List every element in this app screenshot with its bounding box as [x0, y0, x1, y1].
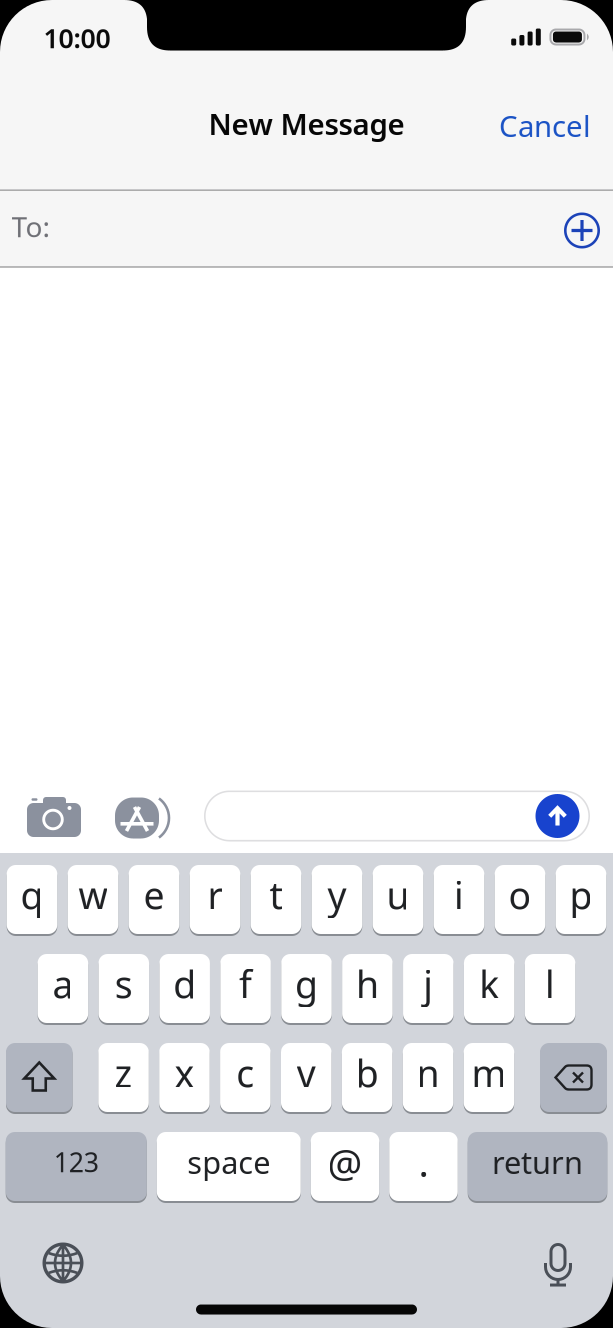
- button[interactable]: s: [98, 954, 149, 1023]
- button[interactable]: Dictate: [536, 1242, 580, 1288]
- staticText: y: [327, 870, 346, 920]
- staticText: To:: [11, 208, 50, 245]
- button[interactable]: r: [190, 865, 240, 934]
- button[interactable]: Cancel: [491, 106, 599, 145]
- button[interactable]: Add Contact: [560, 208, 604, 252]
- button[interactable]: u: [373, 865, 423, 934]
- button[interactable]: space: [157, 1132, 301, 1201]
- staticText: j: [423, 959, 433, 1009]
- button[interactable]: f: [220, 954, 271, 1023]
- staticText: 123: [54, 1144, 99, 1180]
- staticText: .: [418, 1136, 428, 1188]
- button[interactable]: h: [342, 954, 393, 1023]
- button[interactable]: z: [98, 1043, 149, 1112]
- button[interactable]: a: [38, 954, 88, 1023]
- button[interactable]: e: [129, 865, 179, 934]
- staticText: s: [115, 959, 133, 1009]
- button[interactable]: l: [525, 954, 575, 1023]
- button[interactable]: p: [556, 865, 606, 934]
- staticText: l: [545, 959, 555, 1009]
- button[interactable]: 123: [6, 1132, 147, 1201]
- button[interactable]: q: [7, 865, 57, 934]
- staticText: a: [52, 959, 73, 1009]
- staticText: q: [20, 870, 43, 920]
- staticText: h: [356, 959, 379, 1009]
- staticText: i: [454, 870, 464, 920]
- staticText: return: [492, 1142, 583, 1182]
- button[interactable]: y: [312, 865, 362, 934]
- staticText: x: [174, 1048, 194, 1098]
- button[interactable]: Next Keyboard: [41, 1241, 85, 1285]
- button[interactable]: b: [342, 1043, 392, 1112]
- staticText: r: [207, 870, 222, 920]
- button[interactable]: w: [68, 865, 118, 934]
- button[interactable]: n: [403, 1043, 453, 1112]
- staticText: u: [386, 870, 409, 920]
- button[interactable]: o: [495, 865, 545, 934]
- staticText: e: [143, 870, 164, 920]
- staticText: f: [239, 959, 252, 1009]
- staticText: d: [173, 959, 196, 1009]
- staticText: v: [297, 1048, 316, 1098]
- staticText: n: [417, 1048, 440, 1098]
- button[interactable]: i: [434, 865, 484, 934]
- staticText: t: [269, 870, 282, 920]
- button[interactable]: Apps: [109, 794, 165, 841]
- staticText: space: [187, 1142, 270, 1182]
- staticText: b: [356, 1048, 379, 1098]
- button[interactable]: d: [159, 954, 210, 1023]
- button[interactable]: g: [281, 954, 332, 1023]
- staticText: Cancel: [499, 106, 591, 145]
- button[interactable]: Delete: [540, 1043, 607, 1112]
- staticText: m: [471, 1048, 506, 1098]
- staticText: c: [236, 1048, 254, 1098]
- button[interactable]: t: [251, 865, 301, 934]
- button[interactable]: k: [464, 954, 514, 1023]
- button[interactable]: Shift: [6, 1043, 72, 1112]
- staticText: New Message: [208, 104, 404, 143]
- staticText: k: [479, 959, 499, 1009]
- button[interactable]: Camera: [26, 795, 82, 841]
- button[interactable]: c: [220, 1043, 271, 1112]
- staticText: @: [327, 1136, 362, 1188]
- button[interactable]: @: [311, 1132, 379, 1201]
- button[interactable]: j: [403, 954, 453, 1023]
- button[interactable]: v: [281, 1043, 331, 1112]
- button[interactable]: m: [464, 1043, 514, 1112]
- staticText: p: [569, 870, 592, 920]
- button[interactable]: .: [389, 1132, 458, 1201]
- staticText: z: [115, 1048, 133, 1098]
- button[interactable]: return: [468, 1132, 607, 1201]
- staticText: w: [78, 870, 107, 920]
- staticText: g: [295, 959, 318, 1009]
- button[interactable]: Send: [535, 794, 579, 838]
- staticText: 10:00: [43, 20, 110, 56]
- button[interactable]: x: [159, 1043, 210, 1112]
- staticText: o: [508, 870, 531, 920]
